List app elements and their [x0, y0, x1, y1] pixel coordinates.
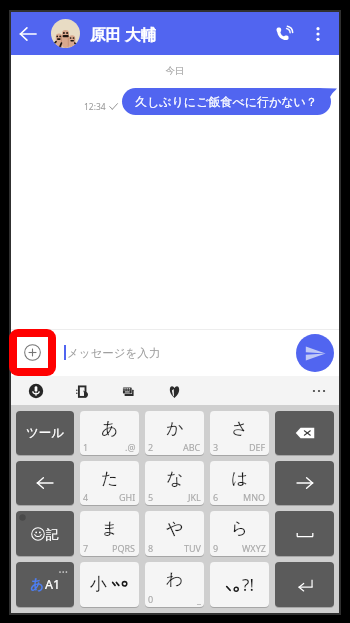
staticText: さ	[231, 418, 249, 439]
staticText: ABC	[183, 441, 201, 453]
button[interactable]: Handwriting input	[71, 380, 93, 402]
button[interactable]: Delete	[275, 411, 334, 455]
staticText: 3	[213, 441, 219, 453]
button[interactable]: Voice input	[25, 380, 47, 402]
button[interactable]: Cursor left	[16, 461, 74, 505]
staticText: 5	[148, 491, 154, 503]
button[interactable]: ま	[80, 511, 139, 556]
button[interactable]: や	[145, 511, 204, 556]
staticText: MNO	[243, 491, 266, 503]
staticText: 12:34	[84, 101, 106, 113]
staticText: 久しぶりにご飯食べに行かない？	[135, 94, 318, 109]
staticText: か	[166, 418, 184, 439]
button[interactable]: Change keyboard	[117, 380, 139, 402]
button[interactable]: More options	[303, 19, 333, 49]
button[interactable]: わ	[145, 562, 204, 607]
staticText: あ	[101, 418, 119, 439]
button[interactable]: は	[210, 461, 269, 505]
staticText: 1	[83, 441, 89, 453]
staticText: 記	[46, 526, 59, 542]
button[interactable]: た	[80, 461, 139, 505]
staticText: _	[197, 593, 201, 605]
staticText: メッセージを入力	[67, 346, 161, 360]
button[interactable]: な	[145, 461, 204, 505]
button[interactable]: ツール	[16, 411, 74, 455]
staticText: 6	[213, 491, 219, 503]
button[interactable]: か	[145, 411, 204, 455]
button[interactable]: あ	[80, 411, 139, 455]
button[interactable]: さ	[210, 411, 269, 455]
button[interactable]: Add attachment	[17, 337, 48, 368]
button[interactable]: Back	[11, 17, 45, 51]
staticText: わ	[166, 569, 184, 590]
staticText: WXYZ	[242, 542, 266, 554]
staticText: な	[166, 468, 184, 489]
staticText: A1	[45, 576, 61, 593]
staticText: DEF	[249, 441, 266, 453]
button[interactable]: Cursor right	[275, 461, 334, 505]
staticText: た	[101, 468, 119, 489]
button[interactable]: Voice call	[268, 18, 300, 50]
staticText: 8	[148, 542, 154, 554]
staticText: や	[166, 518, 184, 539]
button[interactable]: Change input mode	[16, 562, 74, 607]
button[interactable]: ら	[210, 511, 269, 556]
staticText: TUV	[184, 542, 201, 554]
button[interactable]: dakuten	[80, 562, 139, 607]
button[interactable]: Enter	[275, 562, 334, 607]
staticText: GHI	[119, 491, 136, 503]
button[interactable]: Space	[275, 511, 334, 556]
button[interactable]: punct	[210, 562, 269, 607]
staticText: ?!	[242, 573, 254, 596]
button[interactable]: Send	[296, 334, 334, 372]
staticText: PQRS	[112, 542, 136, 554]
staticText: あ	[30, 576, 44, 593]
button[interactable]: Emoji and symbols	[16, 511, 74, 556]
staticText: 7	[83, 542, 89, 554]
staticText: 0	[148, 593, 154, 605]
staticText: 4	[83, 491, 89, 503]
staticText: は	[231, 468, 249, 489]
staticText: ら	[231, 518, 249, 539]
staticText: ツール	[26, 425, 65, 441]
staticText: 9	[213, 542, 219, 554]
button[interactable]: More tools	[307, 379, 331, 403]
staticText: JKL	[188, 491, 201, 503]
staticText: 2	[148, 441, 154, 453]
staticText: ま	[101, 518, 119, 539]
staticText: 今日	[11, 65, 339, 77]
staticText: .@	[125, 441, 136, 453]
button[interactable]: Beginner mark	[163, 380, 185, 402]
staticText: 小	[90, 574, 107, 595]
staticText: 原田 大輔	[90, 23, 157, 44]
